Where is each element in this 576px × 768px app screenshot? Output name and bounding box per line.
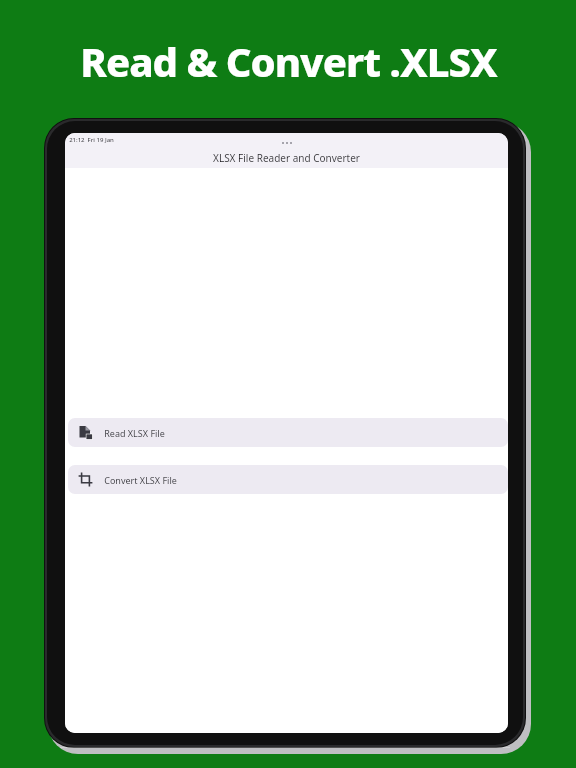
staticText: Read & Convert .XLSX — [80, 34, 497, 88]
staticText: Convert XLSX File — [104, 474, 177, 486]
staticText: XLSX File Reader and Converter — [213, 151, 360, 165]
button[interactable]: Convert XLSX File — [68, 465, 508, 494]
staticText: Read XLSX File — [104, 427, 165, 439]
button[interactable]: Read XLSX File — [68, 418, 508, 447]
staticText: 21:12 Fri 19 Jan — [69, 136, 114, 144]
